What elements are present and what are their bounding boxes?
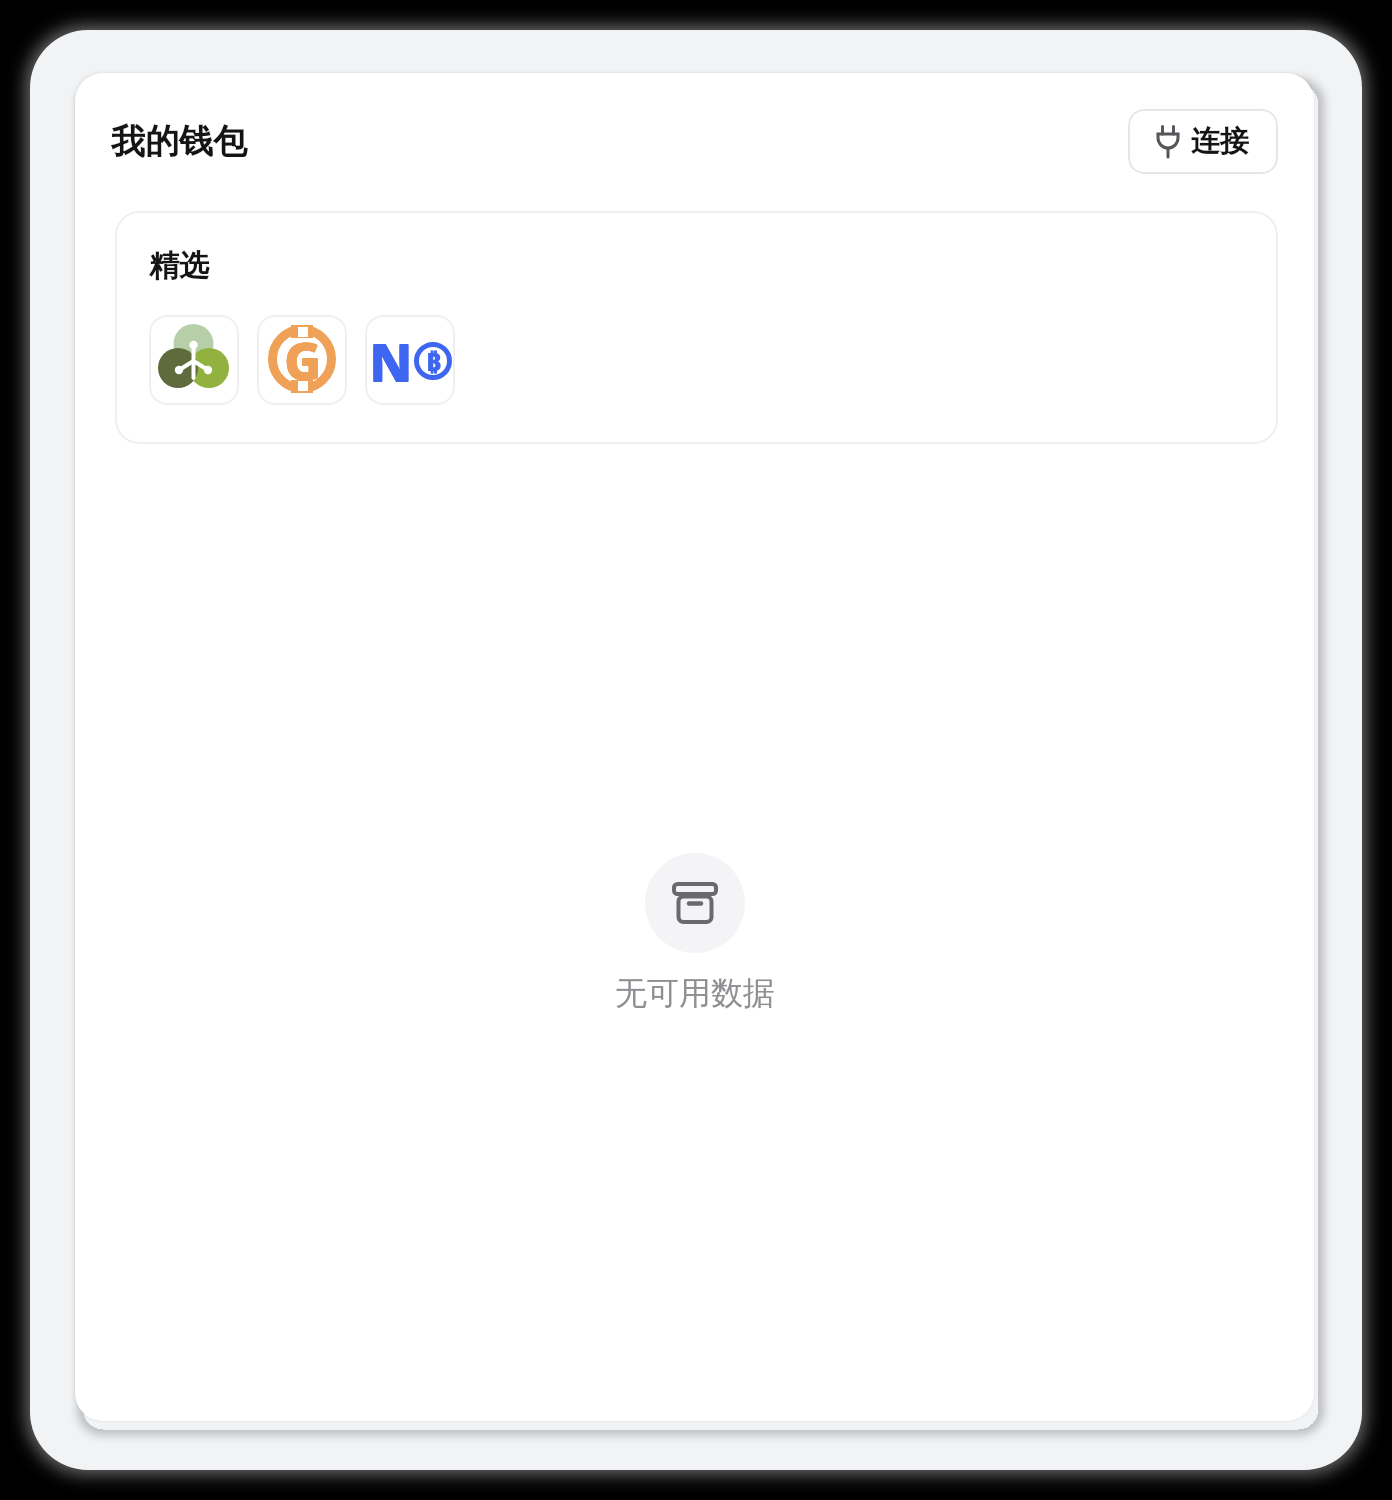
- staticText: G: [285, 326, 322, 394]
- staticText: N: [369, 326, 412, 397]
- button[interactable]: N: [365, 315, 455, 405]
- staticText: N: [369, 325, 412, 396]
- staticText: ₿: [426, 344, 441, 378]
- staticText: N: [370, 325, 413, 396]
- button[interactable]: [149, 315, 239, 405]
- button[interactable]: G: [257, 315, 347, 405]
- staticText: N: [370, 326, 413, 397]
- staticText: G: [284, 326, 321, 394]
- staticText: G: [284, 327, 321, 395]
- staticText: 我的钱包: [111, 120, 247, 163]
- staticText: 精选: [149, 247, 209, 285]
- button[interactable]: 连接: [1128, 109, 1278, 174]
- staticText: ₿: [427, 344, 442, 378]
- staticText: G: [285, 327, 322, 395]
- staticText: 连接: [1191, 123, 1249, 160]
- staticText: 无可用数据: [615, 973, 775, 1013]
